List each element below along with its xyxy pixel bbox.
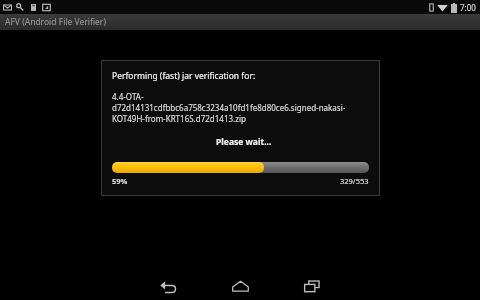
staticText: 59% [112,176,128,186]
staticText: 4.4-OTA- [112,91,144,102]
button[interactable]: Recent apps [276,272,348,300]
staticText: 7:00 [460,2,476,13]
staticText: d72d14131cdfbbc6a758c3234a10fd1fe8d80ce6… [112,102,346,113]
button[interactable]: Home [204,272,276,300]
staticText: Please wait... [216,136,272,148]
staticText: 329/553 [340,176,369,186]
staticText: KOT49H-from-KRT16S.d72d1413.zip [112,113,246,124]
button[interactable]: Back [132,272,204,300]
staticText: AFV (Android File Verifier) [5,16,106,28]
staticText: Performing (fast) jar verification for: [112,70,256,82]
